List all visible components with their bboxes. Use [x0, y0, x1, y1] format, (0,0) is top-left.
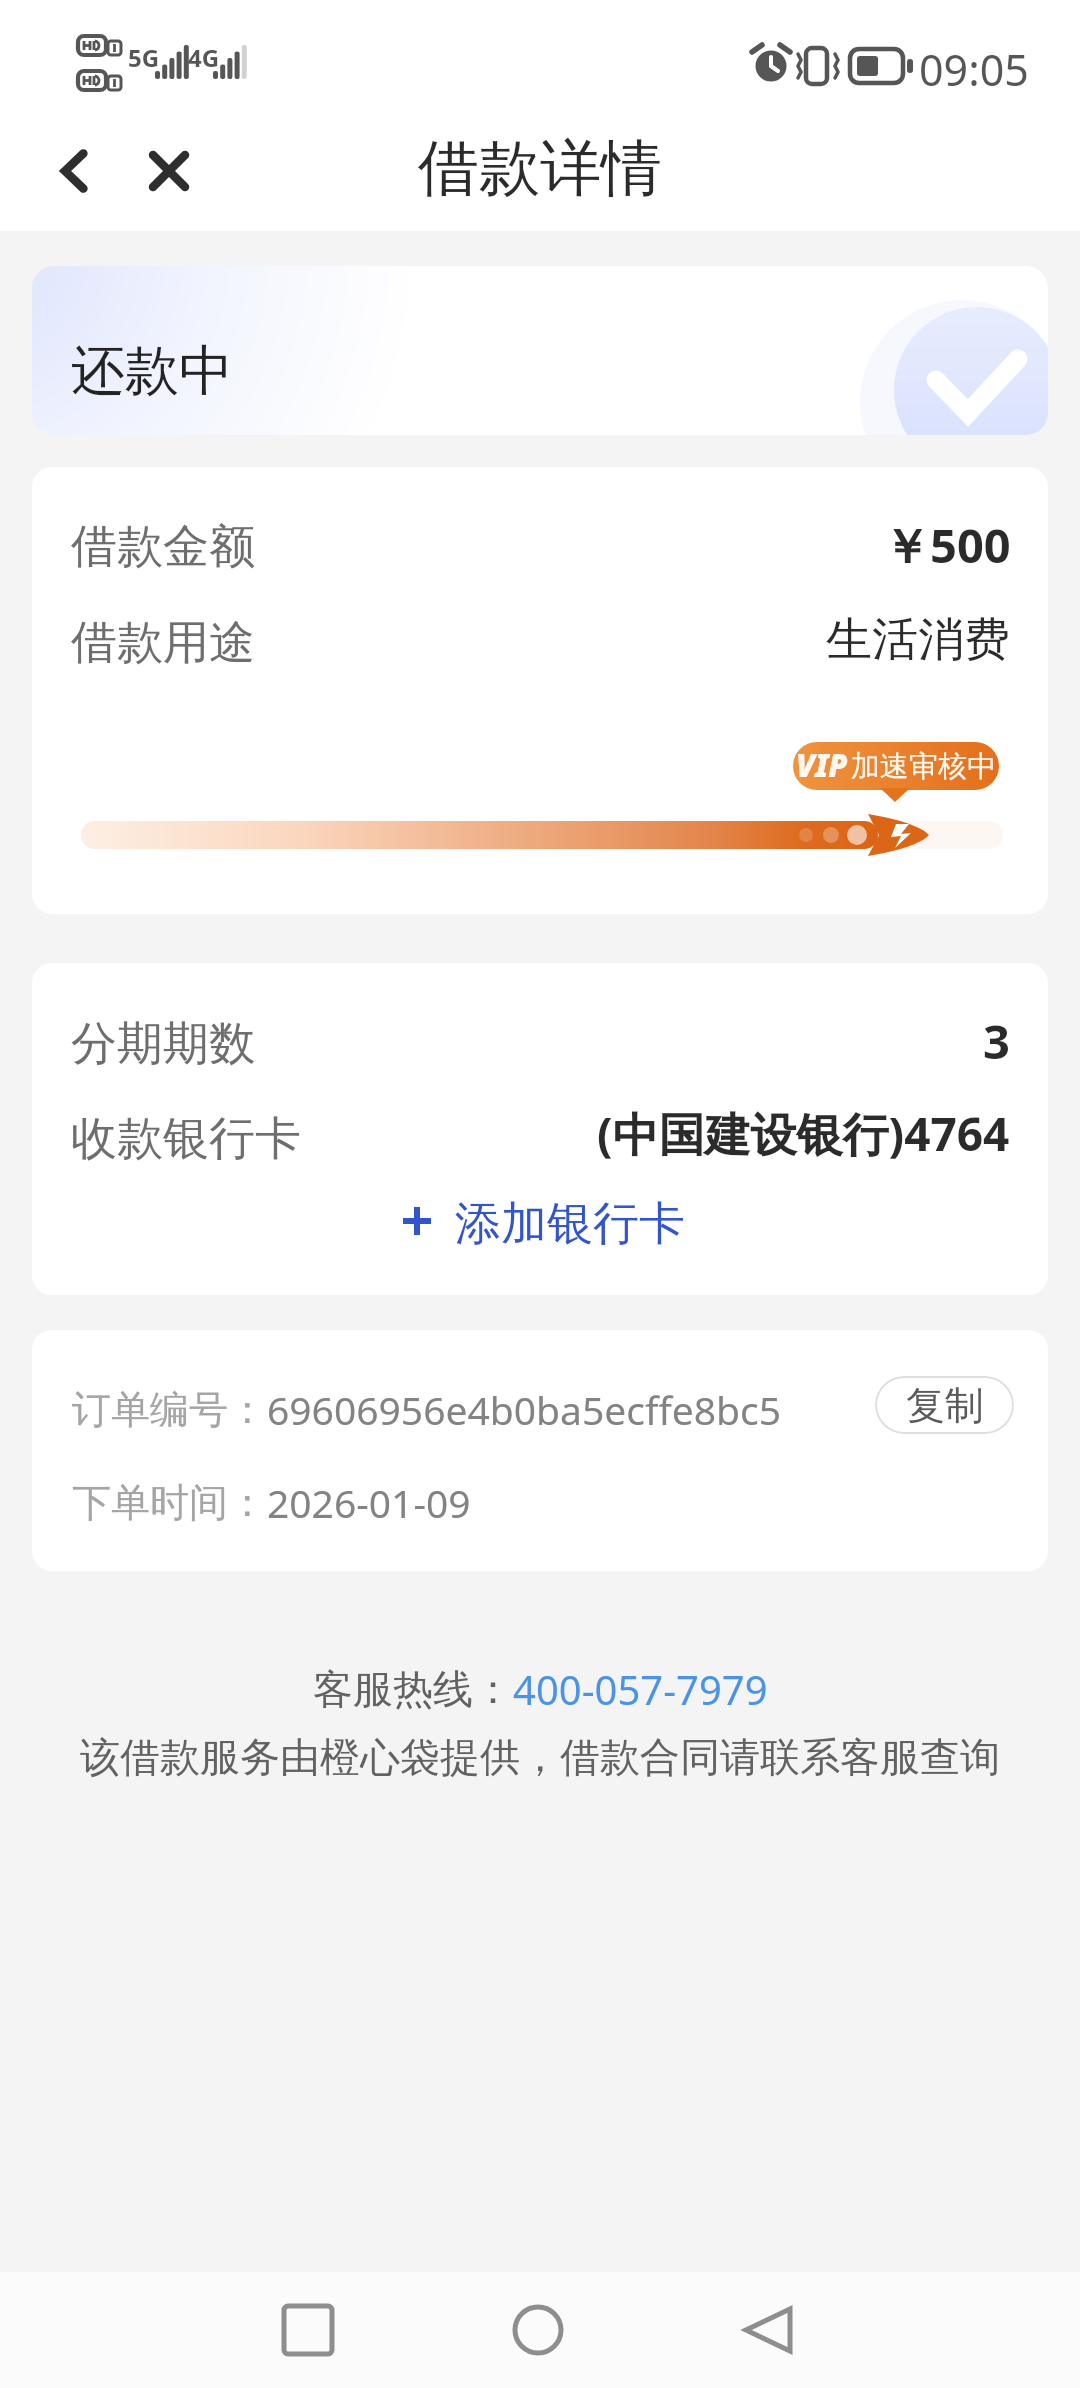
- staticText: VIP: [796, 744, 848, 786]
- button[interactable]: 添加银行卡: [382, 1179, 722, 1249]
- staticText: 订单编号：: [72, 1385, 267, 1434]
- staticText: ￥500: [883, 513, 1011, 577]
- staticText: 借款金额: [71, 518, 255, 576]
- button[interactable]: 还款中: [32, 266, 1048, 435]
- staticText: 09:05: [919, 40, 1029, 99]
- button[interactable]: Back: [718, 2272, 818, 2388]
- staticText: 分期期数: [71, 1015, 255, 1073]
- staticText: 3: [983, 1009, 1010, 1073]
- staticText: 借款用途: [71, 614, 255, 672]
- button[interactable]: 复制: [875, 1376, 1014, 1434]
- staticText: 加速审核中: [851, 748, 996, 785]
- button[interactable]: Back: [40, 138, 106, 204]
- staticText: 借款详情: [418, 130, 662, 207]
- staticText: 69606956e4b0ba5ecffe8bc5: [267, 1383, 782, 1436]
- staticText: 下单时间：: [72, 1478, 267, 1527]
- staticText: 4G: [188, 41, 220, 74]
- staticText: 复制: [906, 1381, 984, 1430]
- button[interactable]: Home: [488, 2272, 588, 2388]
- staticText: 5G: [128, 41, 160, 74]
- staticText: 该借款服务由橙心袋提供，借款合同请联系客服查询: [80, 1732, 1000, 1782]
- staticText: 生活消费: [826, 611, 1010, 669]
- button[interactable]: Recent apps: [258, 2272, 358, 2388]
- staticText: 添加银行卡: [455, 1195, 685, 1253]
- staticText: (中国建设银行)4764: [597, 1102, 1010, 1165]
- button[interactable]: 400-057-7979: [513, 1662, 768, 1716]
- staticText: 还款中: [71, 337, 233, 405]
- staticText: 2026-01-09: [267, 1476, 471, 1529]
- staticText: 收款银行卡: [71, 1110, 301, 1168]
- button[interactable]: Close: [136, 138, 202, 204]
- staticText: 客服热线：: [313, 1664, 513, 1714]
